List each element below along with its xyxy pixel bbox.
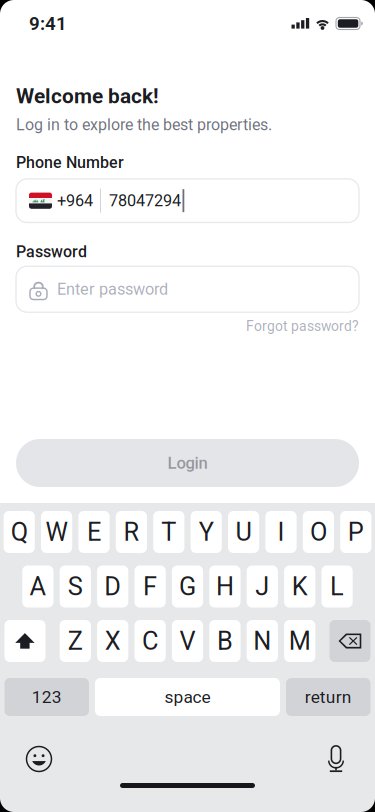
button[interactable]: Dictation	[321, 743, 351, 775]
staticText: G	[179, 572, 196, 601]
staticText: space	[164, 687, 210, 707]
staticText: I	[277, 517, 284, 547]
button[interactable]: L	[321, 565, 353, 607]
staticText: Enter password	[57, 280, 168, 299]
staticText: Password	[16, 242, 87, 261]
staticText: M	[289, 626, 311, 656]
button[interactable]: Q	[4, 511, 35, 553]
button[interactable]: V	[172, 620, 203, 662]
button[interactable]: Shift	[4, 620, 45, 662]
button[interactable]: E	[78, 511, 110, 553]
staticText: K	[292, 572, 308, 601]
staticText: V	[179, 626, 195, 656]
staticText: U	[236, 517, 252, 547]
staticText: Y	[199, 517, 214, 547]
button[interactable]: Delete	[329, 620, 370, 662]
staticText: L	[330, 572, 344, 601]
button[interactable]: P	[340, 511, 371, 553]
staticText: return	[305, 687, 352, 707]
staticText: D	[104, 572, 121, 601]
button[interactable]: A	[22, 565, 53, 607]
button[interactable]: T	[153, 511, 184, 553]
button[interactable]: D	[97, 565, 128, 607]
staticText: H	[216, 572, 234, 601]
button[interactable]: Z	[60, 620, 91, 662]
staticText: F	[143, 572, 157, 601]
staticText: O	[310, 517, 327, 547]
button[interactable]: R	[116, 511, 147, 553]
button[interactable]: Forgot password?	[246, 318, 359, 334]
button[interactable]: S	[60, 565, 91, 607]
button[interactable]: N	[247, 620, 278, 662]
staticText: Q	[11, 517, 28, 547]
button[interactable]: U	[228, 511, 259, 553]
button[interactable]: Emoji	[24, 744, 54, 774]
staticText: Phone Number	[16, 153, 124, 172]
button[interactable]: 123	[4, 678, 89, 716]
button[interactable]: X	[97, 620, 128, 662]
staticText: W	[46, 517, 68, 547]
staticText: N	[253, 626, 271, 656]
staticText: S	[68, 572, 83, 601]
button[interactable]: G	[172, 565, 203, 607]
button[interactable]: O	[303, 511, 334, 553]
staticText: Welcome back!	[16, 84, 159, 108]
staticText: R	[123, 517, 139, 547]
staticText: Log in to explore the best properties.	[16, 115, 272, 134]
button[interactable]: space	[95, 678, 280, 716]
staticText: 78047294	[109, 191, 181, 210]
staticText: C	[142, 626, 158, 656]
button[interactable]: return	[286, 678, 370, 716]
staticText: Login	[167, 453, 207, 473]
staticText: 9:41	[29, 13, 67, 34]
staticText: Forgot password?	[246, 318, 359, 334]
staticText: X	[105, 626, 121, 656]
button[interactable]: C	[134, 620, 166, 662]
button[interactable]: Y	[191, 511, 222, 553]
button[interactable]: B	[209, 620, 240, 662]
staticText: Z	[68, 626, 83, 656]
button[interactable]: I	[265, 511, 297, 553]
button[interactable]: K	[284, 565, 315, 607]
staticText: +964	[57, 191, 93, 210]
button[interactable]: Login	[16, 439, 359, 487]
button[interactable]: H	[209, 565, 240, 607]
staticText: E	[87, 517, 101, 547]
button[interactable]: M	[284, 620, 315, 662]
staticText: J	[255, 572, 269, 601]
button[interactable]: W	[41, 511, 72, 553]
button[interactable]: J	[247, 565, 278, 607]
staticText: B	[217, 626, 233, 656]
staticText: A	[29, 572, 46, 601]
button[interactable]: F	[134, 565, 166, 607]
staticText: P	[348, 517, 364, 547]
staticText: T	[161, 517, 176, 547]
staticText: 123	[32, 687, 62, 707]
